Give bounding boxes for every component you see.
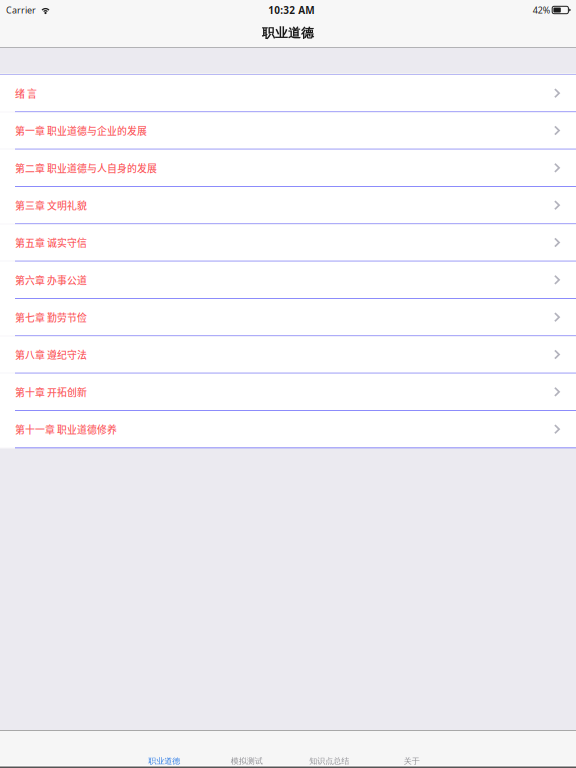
- button[interactable]: 第一章 职业道德与企业的发展: [0, 112, 576, 150]
- button[interactable]: 第五章 诚实守信: [0, 224, 576, 262]
- button[interactable]: 职业道德: [123, 730, 205, 768]
- button[interactable]: 知识点总结: [288, 730, 370, 768]
- button[interactable]: 绪 言: [0, 75, 576, 112]
- staticText: Carrier: [6, 4, 36, 16]
- button[interactable]: 第三章 文明礼貌: [0, 187, 576, 224]
- staticText: 第十章 开拓创新: [15, 385, 87, 399]
- staticText: 知识点总结: [309, 756, 349, 766]
- button[interactable]: 第七章 勤劳节俭: [0, 299, 576, 336]
- staticText: 第七章 勤劳节俭: [15, 310, 87, 324]
- staticText: 职业道德: [262, 25, 314, 41]
- staticText: 第十一章 职业道德修养: [15, 422, 117, 436]
- staticText: 第五章 诚实守信: [15, 235, 87, 250]
- staticText: 职业道德: [148, 756, 180, 766]
- button[interactable]: 第十一章 职业道德修养: [0, 411, 576, 448]
- button[interactable]: 第十章 开拓创新: [0, 374, 576, 411]
- staticText: 第二章 职业道德与人自身的发展: [15, 161, 157, 175]
- button[interactable]: 关于: [370, 730, 453, 768]
- button[interactable]: 第二章 职业道德与人自身的发展: [0, 150, 576, 187]
- staticText: 42%: [533, 4, 550, 16]
- button[interactable]: 模拟测试: [205, 730, 288, 768]
- staticText: 第一章 职业道德与企业的发展: [15, 123, 147, 138]
- button[interactable]: 第六章 办事公道: [0, 262, 576, 299]
- staticText: 第三章 文明礼貌: [15, 198, 87, 212]
- button[interactable]: 第八章 遵纪守法: [0, 336, 576, 374]
- staticText: 关于: [404, 756, 420, 766]
- staticText: 模拟测试: [231, 756, 263, 766]
- staticText: 10:32 AM: [268, 3, 314, 17]
- staticText: 第六章 办事公道: [15, 273, 87, 287]
- staticText: 第八章 遵纪守法: [15, 347, 87, 362]
- staticText: 绪 言: [15, 86, 37, 100]
